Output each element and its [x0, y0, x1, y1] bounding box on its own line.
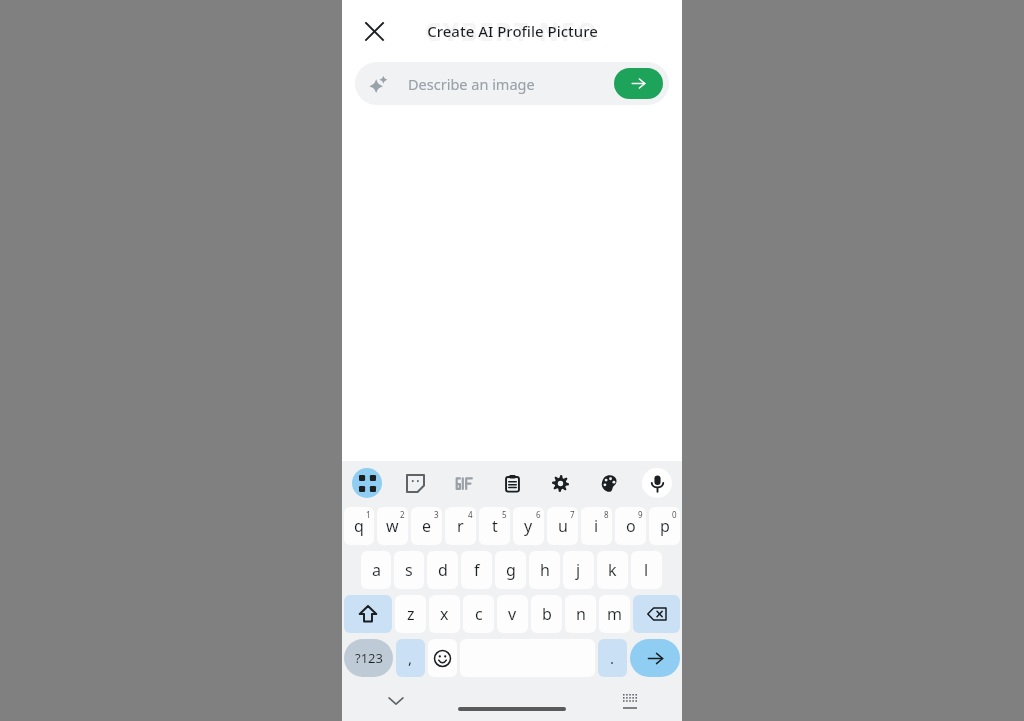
staticText: Create AI Profile Picture [427, 21, 598, 41]
staticText: , [408, 648, 413, 668]
staticText: c [475, 603, 483, 625]
staticText: Describe an image [408, 74, 535, 94]
button[interactable]: Settings [545, 468, 575, 498]
staticText: o [626, 515, 636, 537]
button[interactable]: Clipboard [497, 468, 527, 498]
staticText: 7 [570, 509, 575, 520]
button[interactable]: d [427, 551, 458, 589]
staticText: 6 [536, 509, 541, 520]
button[interactable]: Apps [352, 468, 382, 498]
staticText: d [438, 559, 448, 581]
staticText: s [405, 559, 413, 581]
button[interactable]: Send [614, 68, 663, 99]
button[interactable]: y [513, 507, 544, 545]
staticText: z [407, 603, 415, 625]
button[interactable]: Shift [344, 595, 392, 633]
staticText: v [508, 603, 517, 625]
button[interactable]: i [581, 507, 612, 545]
button[interactable]: Describe an image [355, 62, 669, 105]
staticText: t [492, 515, 498, 537]
staticText: h [540, 559, 550, 581]
staticText: u [558, 515, 568, 537]
button[interactable]: Stickers [400, 468, 430, 498]
staticText: 5 [502, 509, 507, 520]
button[interactable]: z [395, 595, 426, 633]
staticText: l [644, 559, 649, 581]
button[interactable]: Emoji [428, 639, 457, 677]
button[interactable]: ?123 [344, 639, 393, 677]
staticText: 1 [366, 509, 371, 520]
button[interactable]: , [396, 639, 425, 677]
button[interactable]: t [479, 507, 510, 545]
staticText: e [422, 515, 432, 537]
button[interactable]: f [461, 551, 492, 589]
button[interactable]: n [565, 595, 596, 633]
staticText: f [474, 559, 480, 581]
staticText: j [576, 559, 581, 581]
staticText: g [506, 559, 516, 581]
staticText: 8 [604, 509, 609, 520]
staticText: b [542, 603, 552, 625]
button[interactable]: e [411, 507, 442, 545]
button[interactable]: m [599, 595, 630, 633]
button[interactable]: u [547, 507, 578, 545]
staticText: a [372, 559, 381, 581]
staticText: 4 [468, 509, 473, 520]
staticText: w [386, 515, 399, 537]
button[interactable]: l [631, 551, 662, 589]
staticText: 3 [434, 509, 439, 520]
staticText: p [660, 515, 670, 537]
staticText: 2 [400, 509, 405, 520]
staticText: 9 [638, 509, 643, 520]
button[interactable]: Backspace [633, 595, 680, 633]
button[interactable]: GIF [449, 468, 479, 498]
button[interactable]: p [649, 507, 680, 545]
staticText: y [524, 515, 533, 537]
button[interactable]: w [377, 507, 408, 545]
staticText: ?123 [355, 649, 383, 667]
button[interactable]: q [344, 507, 374, 545]
staticText: 0 [672, 509, 677, 520]
button[interactable]: Close [354, 11, 394, 51]
button[interactable]: j [563, 551, 594, 589]
staticText: CYBERT NFO [425, 14, 599, 48]
button[interactable]: b [531, 595, 562, 633]
staticText: n [576, 603, 586, 625]
staticText: q [354, 515, 364, 537]
button[interactable]: c [463, 595, 494, 633]
button[interactable]: k [597, 551, 628, 589]
button[interactable]: Switch keyboard [616, 687, 644, 715]
button[interactable]: x [429, 595, 460, 633]
staticText: i [594, 515, 599, 537]
staticText: r [457, 515, 464, 537]
button[interactable]: h [529, 551, 560, 589]
button[interactable]: s [394, 551, 424, 589]
button[interactable]: r [445, 507, 476, 545]
button[interactable]: o [615, 507, 646, 545]
staticText: x [440, 603, 449, 625]
button[interactable]: Hide keyboard [382, 687, 410, 715]
button[interactable]: v [497, 595, 528, 633]
button[interactable]: . [598, 639, 627, 677]
button[interactable]: Themes [594, 468, 624, 498]
staticText: . [610, 648, 615, 668]
button[interactable]: a [361, 551, 391, 589]
button[interactable]: Voice input [642, 468, 672, 498]
staticText: k [608, 559, 617, 581]
button[interactable]: Enter [630, 639, 680, 677]
button[interactable]: g [495, 551, 526, 589]
staticText: m [607, 603, 622, 625]
